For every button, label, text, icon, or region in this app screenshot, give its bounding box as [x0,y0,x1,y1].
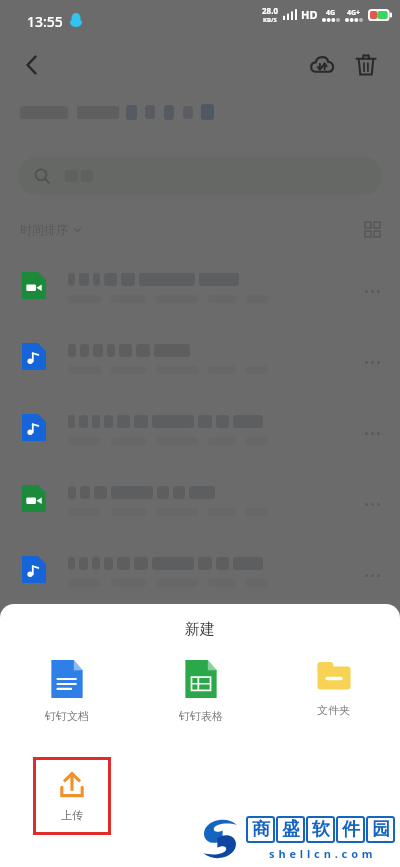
button[interactable]: More options [0,539,400,610]
button[interactable]: Cloud sync [300,43,344,87]
button[interactable]: 上传 [33,757,111,835]
staticText: 4G [326,8,336,18]
staticText: KB/S [263,16,277,24]
staticText: 软 [312,818,330,841]
staticText: 钉钉表格 [179,709,223,723]
staticText: 时间排序 [20,222,68,237]
button[interactable]: More options [0,397,400,468]
staticText: 4G+ [347,8,361,18]
staticText: 文件夹 [317,703,350,717]
staticText: 盛 [282,818,300,841]
staticText: 钉钉文档 [45,709,89,723]
button[interactable]: Grid view [356,214,388,244]
button[interactable]: More options [0,468,400,539]
staticText: 新建 [185,620,215,639]
staticText: 商 [252,818,270,841]
staticText: 件 [342,818,360,841]
staticText: 28.0 [262,5,278,16]
staticText: s h e l l c n . c o m [269,846,374,861]
button[interactable]: 钉钉表格 [134,656,267,727]
button[interactable]: Back [10,43,54,87]
button[interactable]: 钉钉文档 [0,656,134,727]
staticText: 园 [372,818,390,841]
button[interactable]: 时间排序 [16,218,87,241]
button[interactable]: More options [0,326,400,397]
staticText: 上传 [61,808,83,822]
button[interactable]: More options [0,255,400,326]
staticText: 13:55 [27,12,63,31]
button[interactable]: Delete [344,43,388,87]
staticText: HD [301,7,318,22]
button[interactable]: 文件夹 [267,656,400,721]
